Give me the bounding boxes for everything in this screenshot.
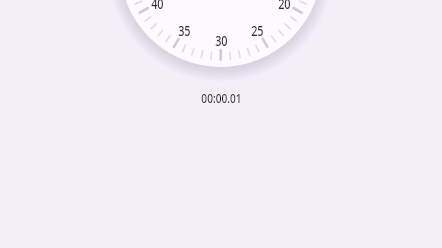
staticText: 25 bbox=[251, 20, 264, 40]
staticText: 30 bbox=[215, 30, 228, 50]
staticText: 00:00.01 bbox=[201, 89, 242, 106]
staticText: 20 bbox=[278, 0, 291, 13]
staticText: 40 bbox=[151, 0, 164, 13]
staticText: 35 bbox=[178, 20, 191, 40]
